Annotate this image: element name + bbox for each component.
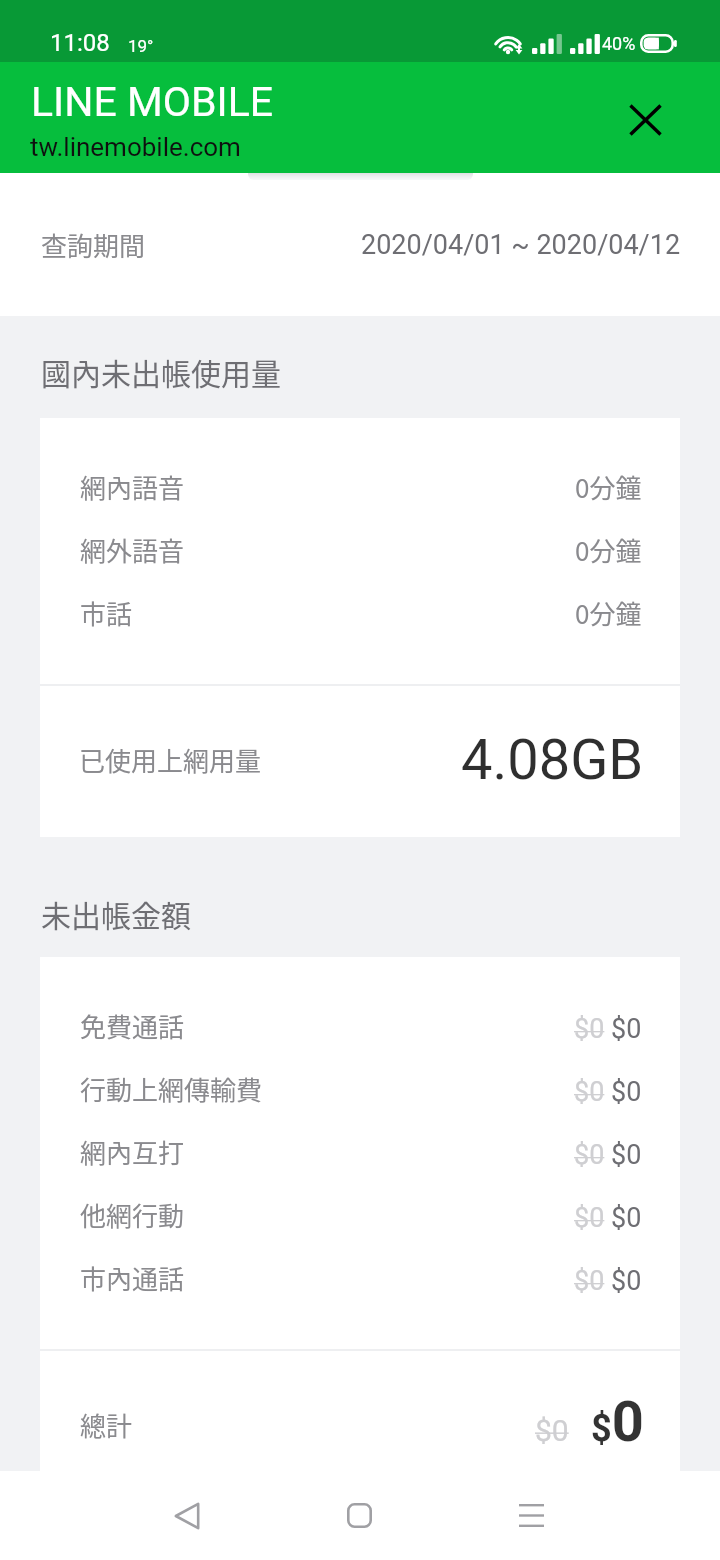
button[interactable]: 免費通話 (40, 994, 680, 1057)
staticText: 0分鐘 (575, 468, 642, 506)
staticText: $0 $0 (574, 1139, 642, 1171)
staticText: 網外語音 (80, 531, 185, 569)
staticText: 2020/04/01 ~ 2020/04/12 (361, 229, 681, 261)
staticText: $0 (535, 1413, 569, 1448)
button[interactable]: 網內語音 (40, 455, 680, 518)
staticText: $0 (591, 1389, 644, 1455)
staticText: 市內通話 (80, 1259, 185, 1297)
button[interactable]: 網內互打 (40, 1120, 680, 1183)
staticText: 11:08 (50, 29, 110, 57)
staticText: 網內語音 (80, 468, 185, 506)
staticText: $0 $0 (574, 1013, 642, 1045)
staticText: 已使用上網用量 (79, 741, 262, 779)
staticText: 市話 (80, 594, 133, 632)
button[interactable]: 市內通話 (40, 1246, 680, 1309)
button[interactable]: 行動上網傳輸費 (40, 1057, 680, 1120)
staticText: 行動上網傳輸費 (80, 1070, 263, 1108)
staticText: $0 $0 (574, 1076, 642, 1108)
staticText: 總計 (80, 1406, 133, 1444)
staticText: 免費通話 (80, 1007, 185, 1045)
staticText: 網內互打 (80, 1133, 185, 1171)
staticText: 0分鐘 (575, 594, 642, 632)
button[interactable]: 網外語音 (40, 518, 680, 581)
button[interactable]: Home (312, 1471, 407, 1560)
button[interactable]: 市話 (40, 581, 680, 644)
staticText: 他網行動 (80, 1196, 185, 1234)
staticText: 查詢期間 (41, 226, 146, 264)
staticText: LINE MOBILE (31, 78, 274, 126)
button[interactable]: Close (615, 90, 675, 150)
staticText: 未出帳金額 (41, 892, 191, 935)
staticText: 19° (128, 36, 154, 56)
staticText: 40% (602, 33, 636, 54)
staticText: 0分鐘 (575, 531, 642, 569)
button[interactable]: 他網行動 (40, 1183, 680, 1246)
staticText: tw.linemobile.com (30, 132, 241, 162)
staticText: 4.08GB (461, 727, 644, 793)
staticText: $0 $0 (574, 1265, 642, 1297)
staticText: $0 $0 (574, 1202, 642, 1234)
button[interactable]: Recents (484, 1471, 579, 1560)
button[interactable]: Back (139, 1471, 234, 1560)
staticText: 國內未出帳使用量 (41, 350, 281, 393)
